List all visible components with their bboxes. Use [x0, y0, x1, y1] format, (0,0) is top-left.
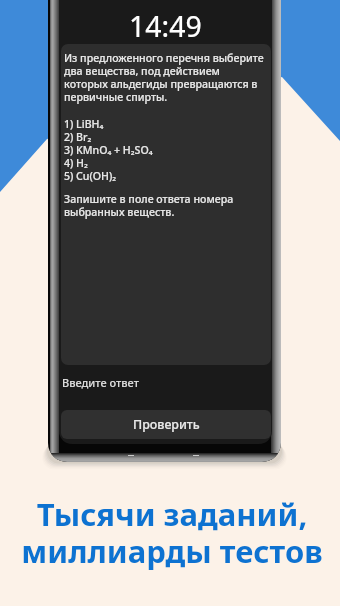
button[interactable]: Из предложенного перечня выберите два ве…: [61, 44, 271, 365]
staticText: Из предложенного перечня выберите два ве…: [64, 51, 264, 104]
button[interactable]: Введите ответ: [61, 369, 271, 396]
staticText: 14:49: [129, 7, 202, 46]
staticText: Тысячи заданий, миллиарды тестов: [21, 493, 323, 573]
button[interactable]: Проверить: [61, 410, 271, 439]
staticText: Проверить: [133, 416, 200, 433]
staticText: Введите ответ: [62, 375, 139, 390]
staticText: 1) LiBH₄ 2) Br₂ 3) KMnO₄ + H₂SO₄ 4) H₂ 5…: [64, 117, 153, 183]
staticText: Запишите в поле ответа номера выбранных …: [64, 192, 234, 219]
